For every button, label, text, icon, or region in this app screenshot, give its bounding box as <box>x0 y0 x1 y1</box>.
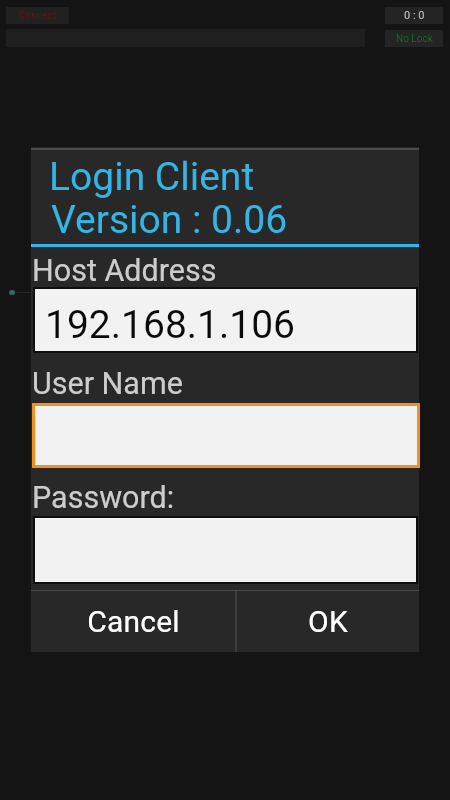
button[interactable]: OK <box>237 591 419 652</box>
staticText: User Name <box>32 366 183 402</box>
staticText: OK <box>308 604 348 639</box>
staticText: Login Client <box>49 154 255 200</box>
button[interactable]: 0 : 0 <box>385 7 443 24</box>
button[interactable]: Cancel <box>31 591 235 652</box>
staticText: No Lock <box>396 33 433 45</box>
button[interactable]: 192.168.1.106 <box>35 289 416 351</box>
staticText: 0 : 0 <box>404 9 425 22</box>
staticText: Version : 0.06 <box>51 197 288 243</box>
button[interactable]: No Lock <box>385 30 443 47</box>
staticText: Host Address <box>32 253 217 289</box>
other: Selection handle <box>9 290 15 295</box>
button[interactable]: Connect <box>6 7 69 24</box>
staticText: Cancel <box>87 604 180 639</box>
staticText: Connect <box>19 10 57 22</box>
staticText: 192.168.1.106 <box>45 302 296 348</box>
staticText: Password: <box>32 480 175 516</box>
